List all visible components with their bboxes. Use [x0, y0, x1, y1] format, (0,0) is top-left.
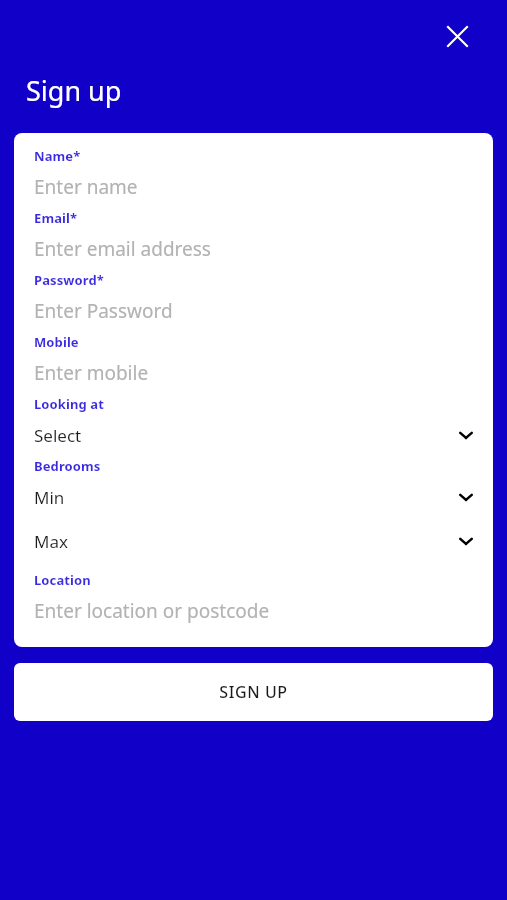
button[interactable]: Max — [34, 519, 477, 563]
staticText: Bedrooms — [34, 457, 101, 475]
staticText: SIGN UP — [219, 681, 288, 703]
staticText: Select — [34, 424, 457, 447]
staticText: Min — [34, 486, 457, 509]
staticText: Mobile — [34, 333, 79, 351]
staticText: Enter mobile — [34, 360, 149, 386]
button[interactable]: Enter mobile — [34, 351, 477, 395]
button[interactable]: Enter name — [34, 165, 477, 209]
button[interactable]: Close — [437, 16, 477, 56]
staticText: Max — [34, 530, 457, 553]
staticText: Enter Password — [34, 298, 173, 324]
staticText: Enter email address — [34, 236, 211, 262]
staticText: Enter name — [34, 174, 138, 200]
button[interactable]: Enter location or postcode — [34, 589, 477, 633]
staticText: Name* — [34, 147, 81, 165]
staticText: Sign up — [26, 72, 122, 109]
button[interactable]: Select — [34, 413, 477, 457]
staticText: Location — [34, 571, 91, 589]
button[interactable]: Min — [34, 475, 477, 519]
button[interactable]: Enter email address — [34, 227, 477, 271]
staticText: Looking at — [34, 395, 104, 413]
button[interactable]: SIGN UP — [14, 663, 493, 721]
staticText: Enter location or postcode — [34, 598, 270, 624]
staticText: Email* — [34, 209, 78, 227]
staticText: Password* — [34, 271, 104, 289]
button[interactable]: Enter Password — [34, 289, 477, 333]
